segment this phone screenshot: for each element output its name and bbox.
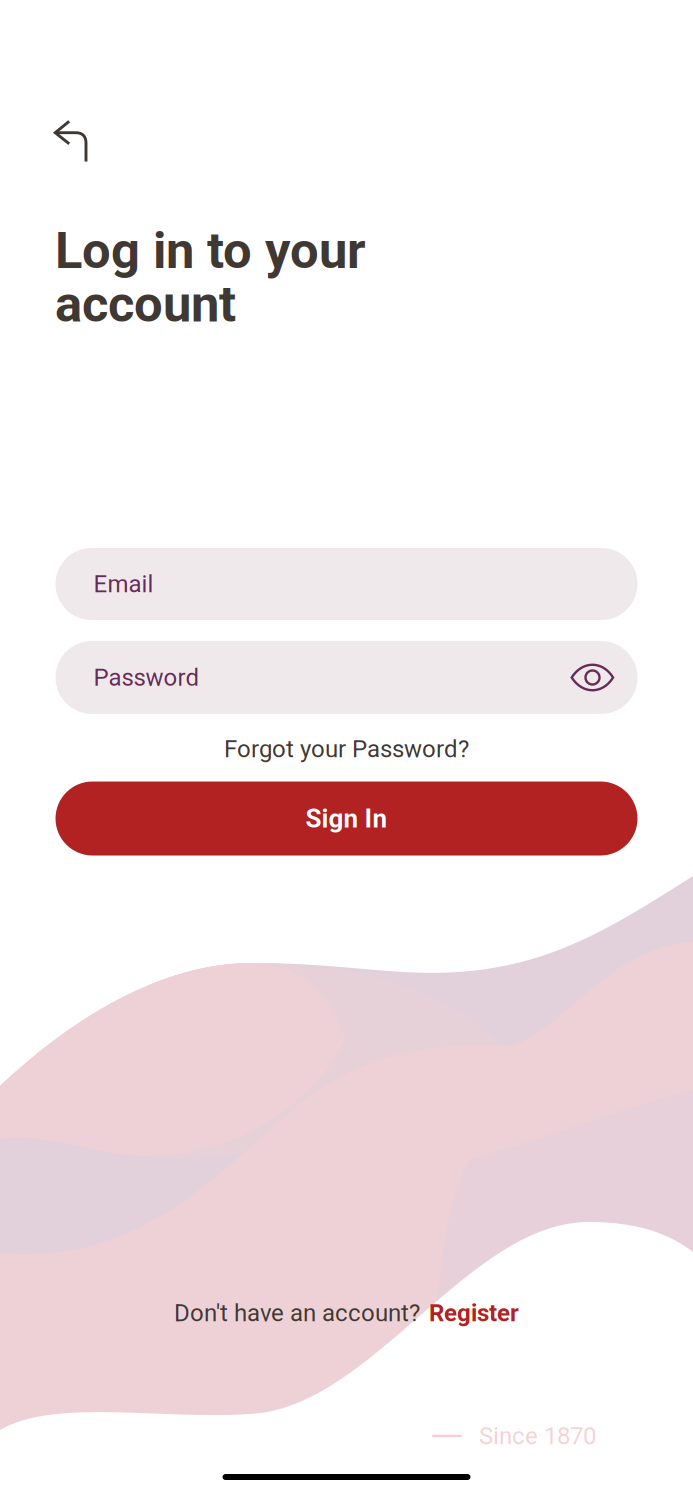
staticText: Don't have an account? bbox=[174, 1299, 420, 1327]
button[interactable]: Don't have an account? bbox=[146, 1296, 546, 1330]
staticText: Register bbox=[429, 1299, 519, 1327]
staticText: Forgot your Password? bbox=[224, 735, 469, 763]
button[interactable]: Back bbox=[40, 108, 96, 170]
button[interactable]: Show password bbox=[567, 652, 617, 702]
staticText: Since 1870 bbox=[479, 1422, 596, 1450]
staticText: Sign In bbox=[305, 803, 387, 834]
staticText: Password bbox=[93, 663, 199, 691]
staticText: Log in to your bbox=[55, 221, 366, 280]
staticText: account bbox=[55, 274, 236, 334]
button[interactable]: Forgot your Password? bbox=[55, 731, 637, 767]
button[interactable]: Sign In bbox=[55, 781, 637, 855]
staticText: Email bbox=[93, 570, 153, 598]
